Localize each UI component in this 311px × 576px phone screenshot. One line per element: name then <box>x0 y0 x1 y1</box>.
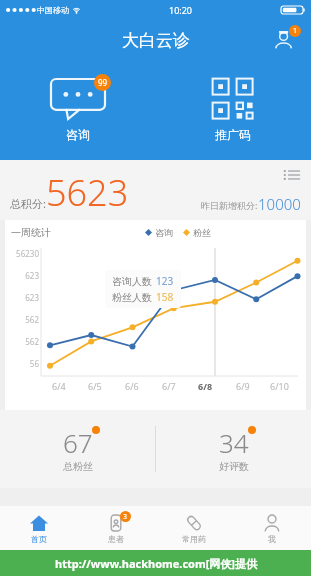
staticText: 咨询 <box>66 127 90 142</box>
button[interactable]: Doctor profile <box>271 25 301 55</box>
button[interactable]: 34 <box>156 410 311 488</box>
button[interactable]: 3 <box>77 506 155 550</box>
staticText: 5623 <box>46 168 129 217</box>
button[interactable]: List details <box>283 166 301 184</box>
staticText: 中国移动 <box>37 5 69 15</box>
staticText: 粉丝 <box>193 227 211 238</box>
staticText: 158 <box>156 290 174 304</box>
staticText: 常用药 <box>182 534 206 544</box>
button[interactable]: 首页 <box>0 506 77 550</box>
staticText: 67 <box>63 425 93 460</box>
button[interactable]: 我 <box>233 506 311 550</box>
staticText: 咨询人数 <box>112 275 152 288</box>
button[interactable]: 67 <box>0 410 155 488</box>
staticText: 10000 <box>258 194 301 214</box>
staticText: 34 <box>219 425 249 460</box>
staticText: 623 <box>25 292 39 314</box>
staticText: 推广码 <box>215 127 251 142</box>
button[interactable]: 常用药 <box>155 506 233 550</box>
staticText: 我 <box>268 534 276 544</box>
staticText: 6/5 <box>88 380 102 392</box>
staticText: 623 <box>25 270 39 292</box>
staticText: 6/9 <box>236 380 250 392</box>
staticText: 6/7 <box>162 380 176 392</box>
staticText: 咨询 <box>155 227 173 238</box>
staticText: 6/8 <box>198 380 213 392</box>
button[interactable]: 99 <box>0 62 155 157</box>
staticText: http://www.hackhome.com[网侠]提供 <box>55 556 257 571</box>
staticText: 99 <box>98 77 108 88</box>
staticText: 6/4 <box>52 380 66 392</box>
staticText: 一周统计 <box>11 226 51 239</box>
staticText: 好评数 <box>219 460 249 473</box>
staticText: 6/10 <box>270 380 289 392</box>
staticText: 3 <box>123 512 128 522</box>
staticText: 562 <box>25 314 39 336</box>
staticText: 粉丝人数 <box>112 291 152 304</box>
staticText: 123 <box>156 274 174 288</box>
staticText: 56 <box>29 358 39 380</box>
staticText: 患者 <box>108 534 124 544</box>
staticText: 1 <box>293 26 298 36</box>
staticText: 6/6 <box>125 380 139 392</box>
staticText: 大白云诊 <box>122 30 190 51</box>
staticText: 56230 <box>16 248 39 270</box>
staticText: 首页 <box>31 534 47 544</box>
staticText: 总粉丝 <box>63 460 93 473</box>
staticText: 昨日新增积分: <box>201 199 258 211</box>
staticText: 10:20 <box>169 4 193 16</box>
button[interactable]: 推广码 <box>155 62 311 157</box>
staticText: 562 <box>25 336 39 358</box>
staticText: 总积分: <box>10 196 46 211</box>
